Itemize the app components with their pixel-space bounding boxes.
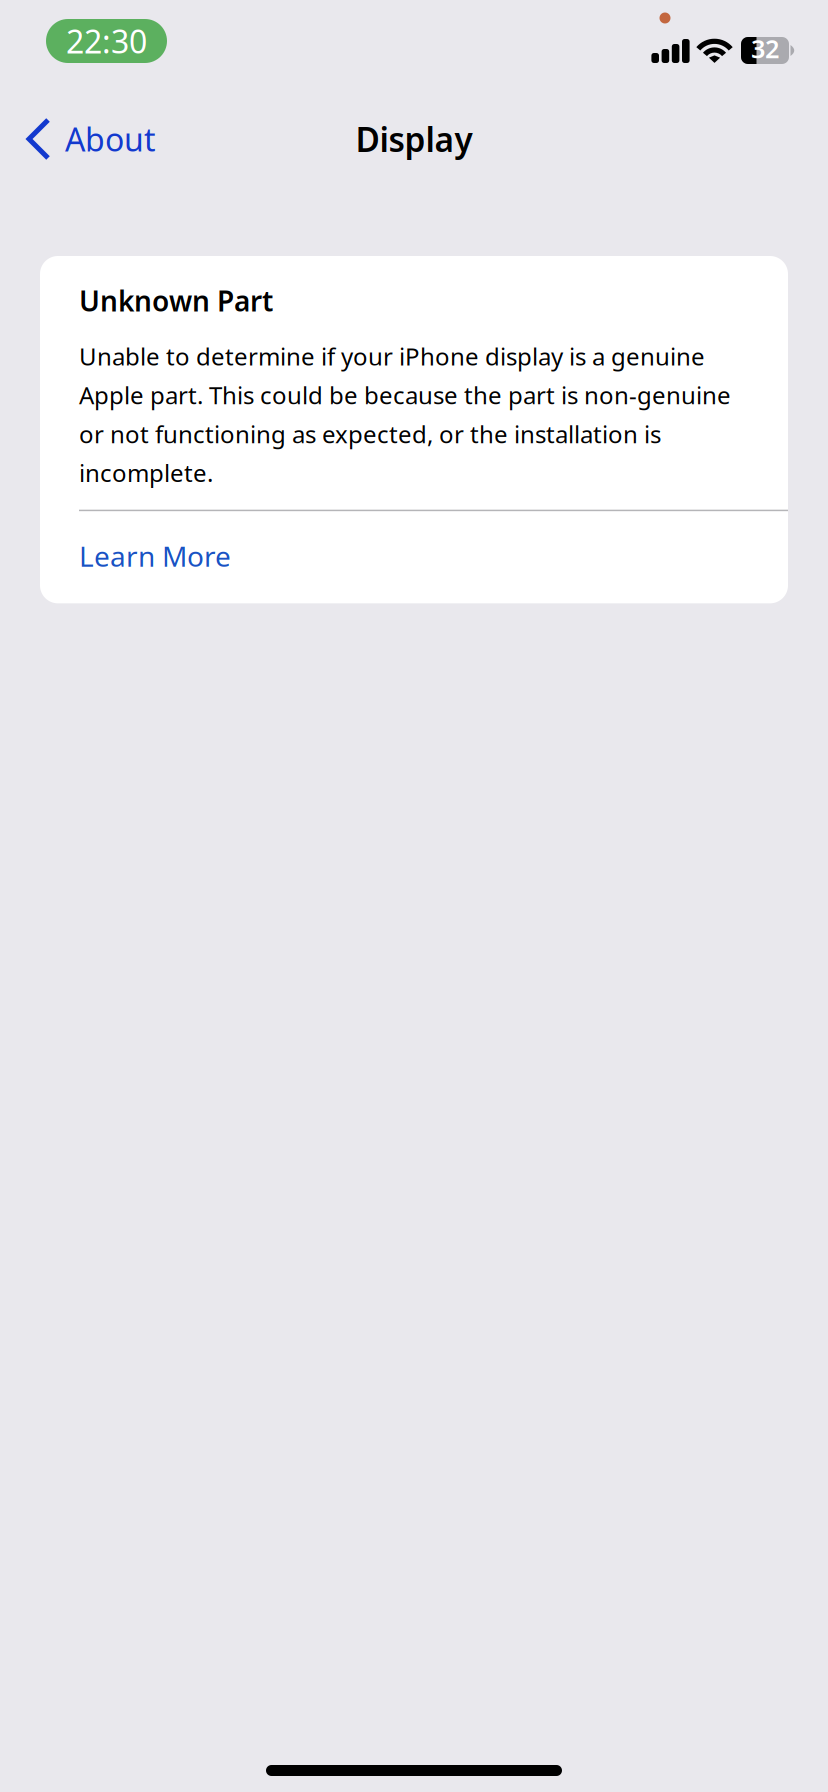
button[interactable]: Learn More	[40, 511, 788, 603]
staticText: Learn More	[79, 537, 231, 574]
staticText: Unable to determine if your iPhone displ…	[79, 340, 731, 489]
staticText: Unknown Part	[79, 282, 273, 319]
staticText: Display	[355, 117, 472, 161]
staticText: 32	[751, 32, 779, 65]
staticText: About	[65, 118, 156, 160]
button[interactable]: Back to About	[0, 109, 172, 169]
staticText: 22:30	[66, 20, 147, 62]
